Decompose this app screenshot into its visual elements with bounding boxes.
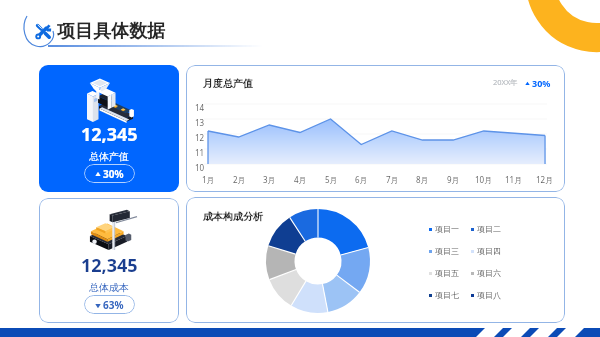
staticText: 12,345	[81, 253, 138, 278]
staticText: 14	[195, 102, 205, 113]
staticText: 项目三	[435, 246, 459, 256]
button[interactable]: 12,345	[39, 65, 179, 192]
staticText: 4月	[294, 174, 307, 185]
staticText: 13	[195, 117, 205, 128]
staticText: 11	[195, 147, 205, 158]
staticText: 8月	[416, 174, 429, 185]
staticText: 1月	[202, 174, 215, 185]
staticText: 12	[195, 132, 205, 143]
staticText: 9月	[447, 174, 460, 185]
staticText: 10月	[475, 174, 493, 185]
staticText: 项目具体数据	[57, 20, 165, 43]
staticText: 项目五	[435, 268, 459, 278]
staticText: 6月	[355, 174, 368, 185]
staticText: 10	[195, 162, 205, 173]
staticText: 30%	[103, 167, 124, 181]
staticText: 月度总产值	[203, 77, 253, 90]
staticText: 30%	[532, 77, 551, 89]
staticText: 12,345	[81, 122, 138, 147]
staticText: 5月	[325, 174, 338, 185]
staticText: 总体成本	[89, 281, 129, 294]
staticText: 总体产值	[89, 150, 129, 163]
staticText: 项目四	[477, 246, 501, 256]
staticText: 成本构成分析	[203, 210, 263, 223]
staticText: 20XX年	[493, 77, 518, 87]
staticText: 2月	[233, 174, 246, 185]
staticText: 12月	[536, 174, 554, 185]
staticText: 项目六	[477, 268, 501, 278]
button[interactable]: 12,345	[39, 198, 179, 323]
staticText: 项目二	[477, 224, 501, 234]
staticText: 项目七	[435, 290, 459, 300]
staticText: 项目八	[477, 290, 501, 300]
staticText: 项目一	[435, 224, 459, 234]
staticText: 11月	[505, 174, 523, 185]
staticText: 7月	[386, 174, 399, 185]
staticText: 63%	[103, 298, 124, 312]
staticText: 3月	[263, 174, 276, 185]
